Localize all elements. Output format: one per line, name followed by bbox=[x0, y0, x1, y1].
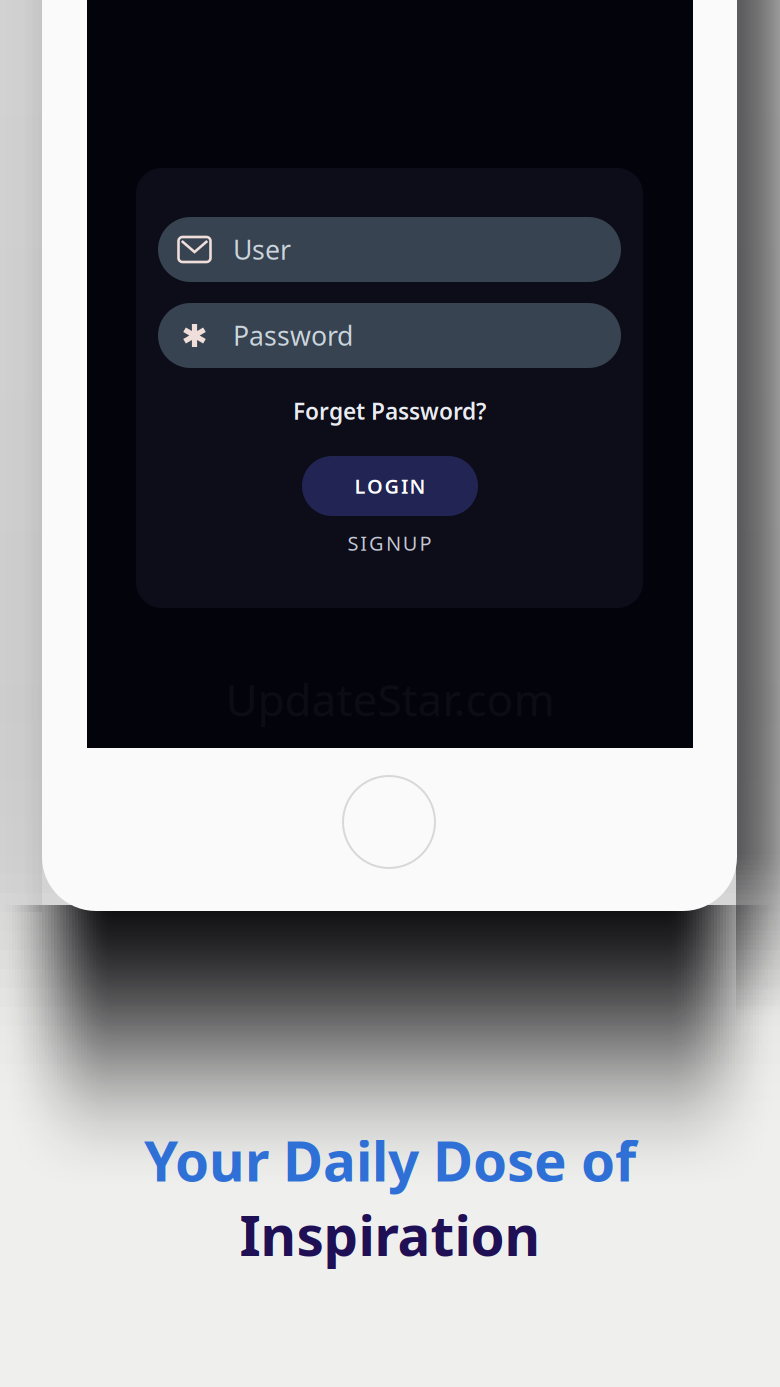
button[interactable]: SIGNUP bbox=[136, 529, 643, 557]
staticText: Password bbox=[233, 318, 353, 353]
staticText: LOGIN bbox=[354, 473, 425, 499]
button[interactable]: LOGIN bbox=[302, 456, 478, 516]
staticText: SIGNUP bbox=[347, 530, 431, 556]
staticText: Inspiration bbox=[239, 1199, 540, 1271]
staticText: Your Daily Dose of bbox=[144, 1124, 636, 1197]
button[interactable]: User bbox=[158, 217, 621, 282]
staticText: User bbox=[233, 232, 291, 267]
staticText: Forget Password? bbox=[293, 396, 486, 426]
button[interactable]: Password bbox=[158, 303, 621, 368]
staticText: UpdateStar.com bbox=[225, 670, 554, 728]
button[interactable]: Forget Password? bbox=[136, 396, 643, 426]
